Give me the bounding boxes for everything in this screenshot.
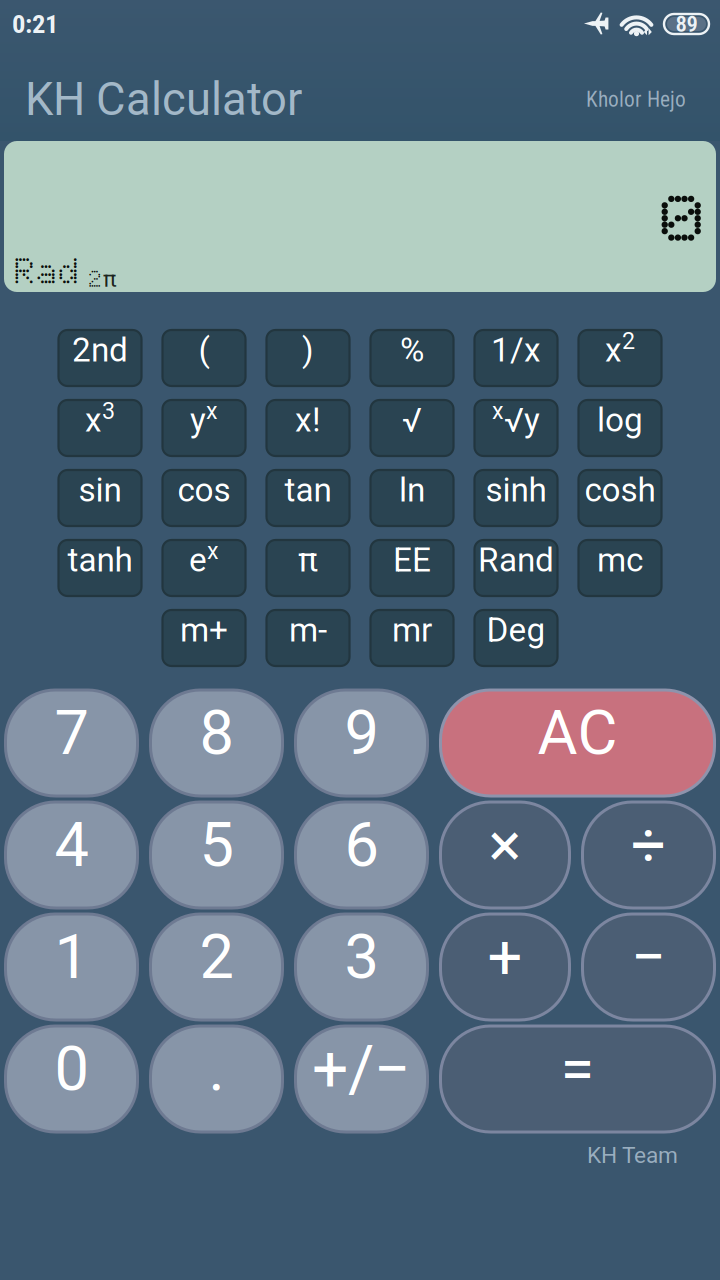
staticText: m+ [180,610,228,650]
staticText: x [85,400,102,440]
button[interactable]: √ [370,400,453,456]
staticText: √ [402,400,422,440]
staticText: 5 [199,809,233,881]
staticText: 2 [622,327,635,355]
button[interactable]: ln [370,470,453,526]
staticText: % [400,330,424,370]
button[interactable]: 4 [5,802,137,908]
button[interactable]: e [162,540,245,596]
staticText: Rad [15,249,81,292]
staticText: ÷ [631,809,666,881]
button[interactable]: sin [58,470,141,526]
staticText: π [103,266,117,292]
staticText: Deg [486,610,545,650]
button[interactable]: 1/x [474,330,557,386]
button[interactable]: +/− [295,1026,427,1132]
staticText: ) [302,330,314,370]
button[interactable]: mr [370,610,453,666]
staticText: 2nd [72,330,128,370]
button[interactable]: x [58,400,141,456]
staticText: x [207,537,219,565]
staticText: π [298,540,318,580]
staticText: EE [393,540,431,580]
button[interactable]: + [440,914,569,1020]
button[interactable]: 2 [150,914,282,1020]
button[interactable]: x [578,330,661,386]
staticText: 2 [199,921,233,993]
button[interactable]: = [440,1026,714,1132]
button[interactable]: Deg [474,610,557,666]
staticText: + [487,921,522,993]
button[interactable]: tanh [58,540,141,596]
button[interactable]: m+ [162,610,245,666]
button[interactable]: 7 [5,690,137,796]
staticText: mr [392,610,432,650]
staticText: = [560,1033,594,1105]
button[interactable]: 0 [5,1026,137,1132]
button[interactable]: × [440,802,569,908]
staticText: x [605,330,622,370]
staticText: y [190,400,206,440]
button[interactable]: log [578,400,661,456]
staticText: 2 [89,265,103,292]
staticText: mc [597,540,643,580]
staticText: 0:21 [12,8,58,40]
staticText: x! [295,400,321,440]
staticText: ( [198,330,209,370]
button[interactable]: 8 [150,690,282,796]
button[interactable]: tan [266,470,349,526]
button[interactable]: x [474,400,557,456]
button[interactable]: ( [162,330,245,386]
button[interactable]: cos [162,470,245,526]
staticText: 8 [199,697,233,769]
button[interactable]: ÷ [582,802,714,908]
button[interactable]: π [266,540,349,596]
staticText: 1 [54,921,88,993]
staticText: 9 [344,697,378,769]
staticText: 4 [54,809,88,881]
staticText: 0 [54,1033,88,1105]
staticText: 3 [102,397,115,425]
staticText: sin [78,470,121,510]
staticText: x [206,397,218,425]
button[interactable]: % [370,330,453,386]
staticText: log [597,400,643,440]
button[interactable]: − [582,914,714,1020]
staticText: sinh [485,470,546,510]
button[interactable]: mc [578,540,661,596]
staticText: AC [537,697,617,769]
button[interactable]: 1 [5,914,137,1020]
button[interactable]: 3 [295,914,427,1020]
staticText: cos [177,470,230,510]
staticText: KH Team [587,1142,678,1169]
staticText: 3 [344,921,378,993]
button[interactable]: 2nd [58,330,141,386]
button[interactable]: . [150,1026,282,1132]
staticText: x [492,397,504,425]
staticText: tan [284,470,331,510]
staticText: tanh [67,540,132,580]
button[interactable]: 5 [150,802,282,908]
staticText: 6 [344,809,378,881]
button[interactable]: y [162,400,245,456]
staticText: m- [289,610,327,650]
button[interactable]: m- [266,610,349,666]
staticText: KH Calculator [25,73,302,126]
staticText: cosh [584,470,655,510]
staticText: ln [399,470,425,510]
button[interactable]: 9 [295,690,427,796]
button[interactable]: Rand [474,540,557,596]
button[interactable]: x! [266,400,349,456]
staticText: +/− [312,1031,411,1106]
button[interactable]: cosh [578,470,661,526]
button[interactable]: EE [370,540,453,596]
staticText: 1/x [491,330,541,370]
button[interactable]: AC [440,690,714,796]
staticText: e [189,540,207,580]
button[interactable]: sinh [474,470,557,526]
staticText: Rand [478,540,554,580]
staticText: Kholor Hejo [586,87,686,112]
button[interactable]: 6 [295,802,427,908]
staticText: √y [504,400,540,440]
button[interactable]: ) [266,330,349,386]
